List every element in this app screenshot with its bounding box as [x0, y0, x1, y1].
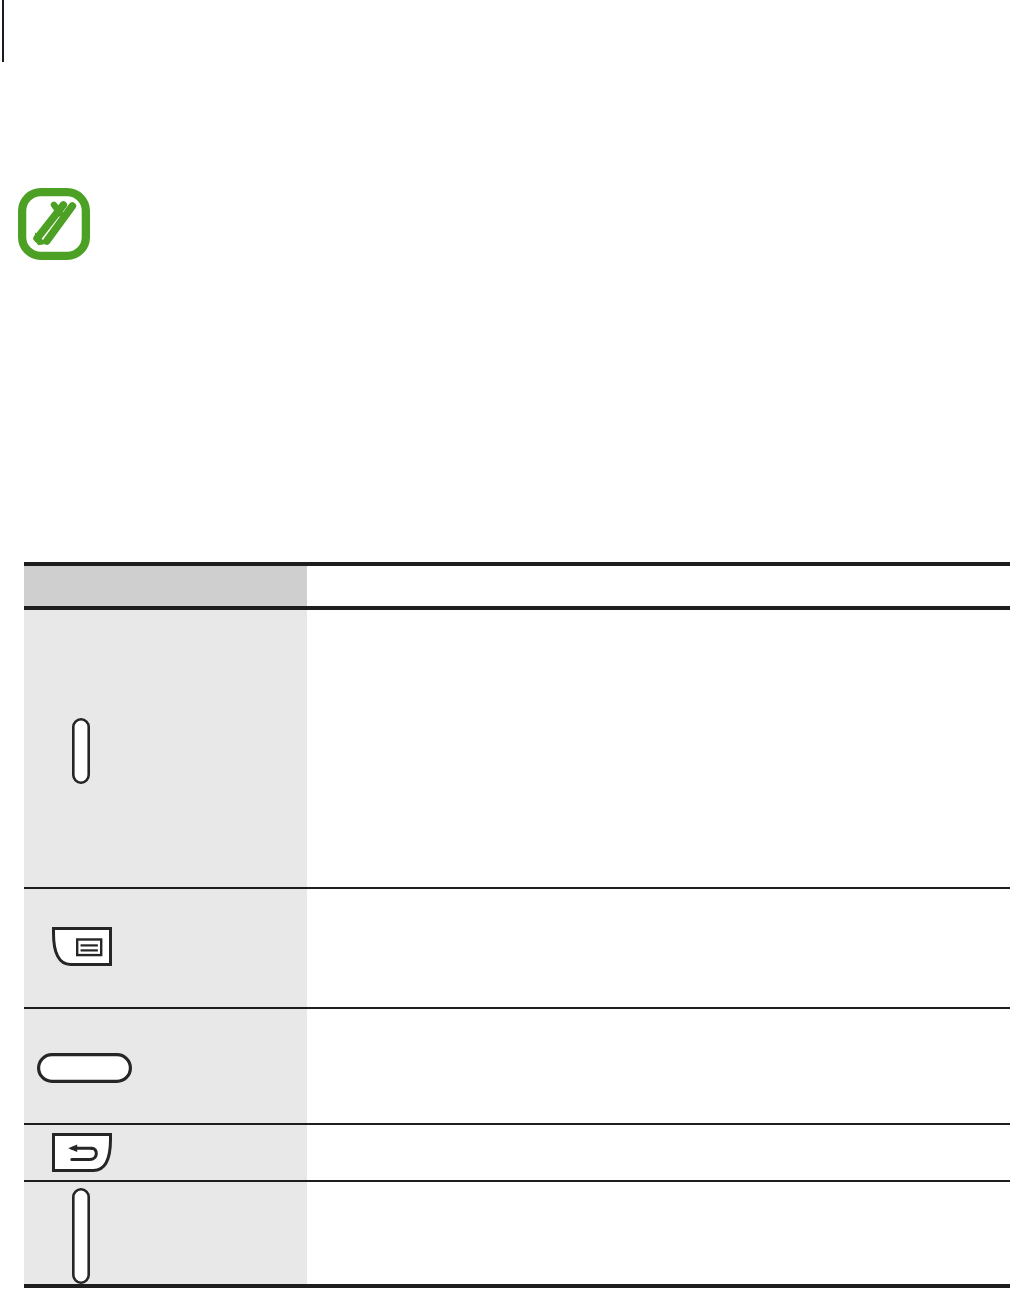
button[interactable]: Power key: [24, 610, 1010, 887]
button[interactable]: Back key: [24, 1125, 1010, 1180]
button[interactable]: Recents key: [24, 889, 1010, 1007]
button[interactable]: Home key: [24, 1009, 1010, 1123]
button[interactable]: Volume key: [24, 1182, 1010, 1284]
